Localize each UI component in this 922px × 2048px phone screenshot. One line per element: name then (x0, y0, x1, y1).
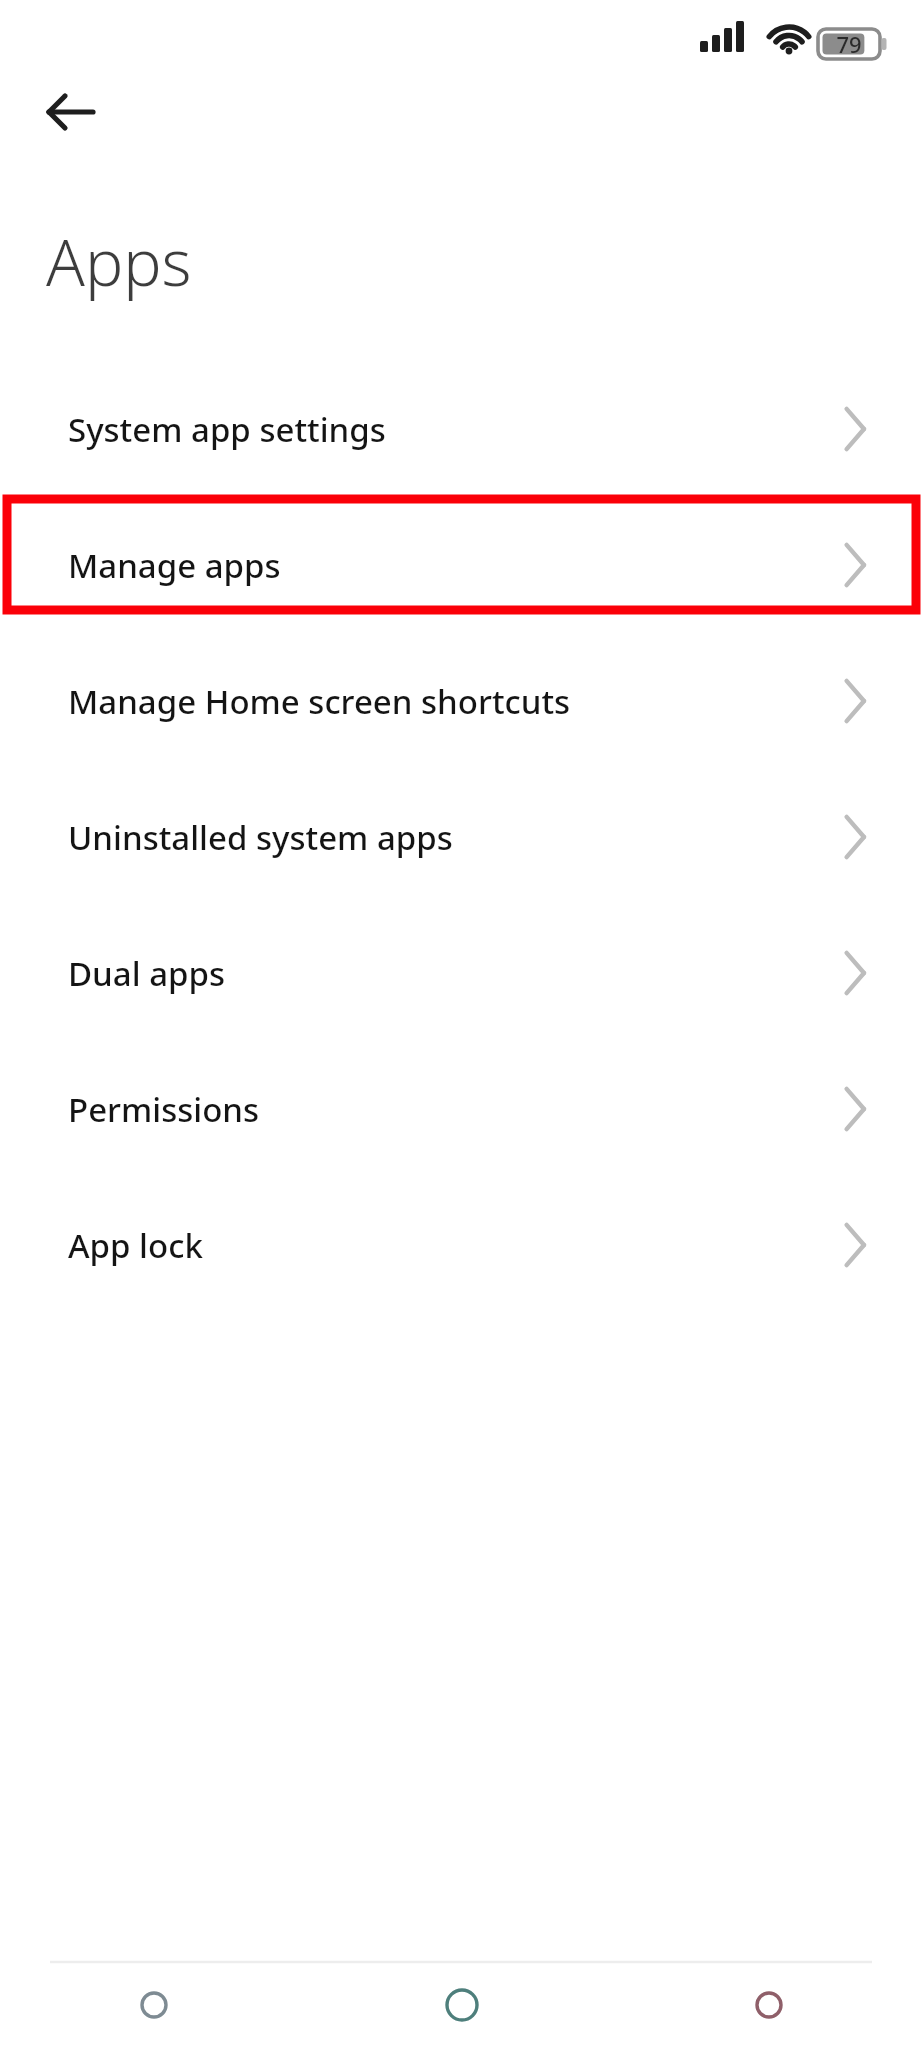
button[interactable]: App lock (0, 1178, 922, 1312)
button[interactable]: Manage Home screen shortcuts (0, 634, 922, 768)
staticText: App lock (68, 1223, 203, 1268)
button[interactable]: Permissions (0, 1042, 922, 1176)
staticText: 79 (820, 29, 878, 59)
staticText: Apps (46, 218, 192, 305)
button[interactable]: Dual apps (0, 906, 922, 1040)
button[interactable]: System app settings (0, 362, 922, 496)
button[interactable]: Back (28, 76, 114, 148)
staticText: System app settings (68, 407, 386, 452)
staticText: Manage apps (68, 543, 281, 588)
staticText: Manage Home screen shortcuts (68, 679, 571, 724)
staticText: Uninstalled system apps (68, 815, 453, 860)
button[interactable]: Uninstalled system apps (0, 770, 922, 904)
button[interactable]: Recents (0, 1962, 308, 2048)
button[interactable]: Back (615, 1962, 922, 2048)
staticText: Dual apps (68, 951, 226, 996)
button[interactable]: Manage apps (0, 498, 922, 632)
button[interactable]: Home (308, 1962, 615, 2048)
staticText: Permissions (68, 1087, 260, 1132)
